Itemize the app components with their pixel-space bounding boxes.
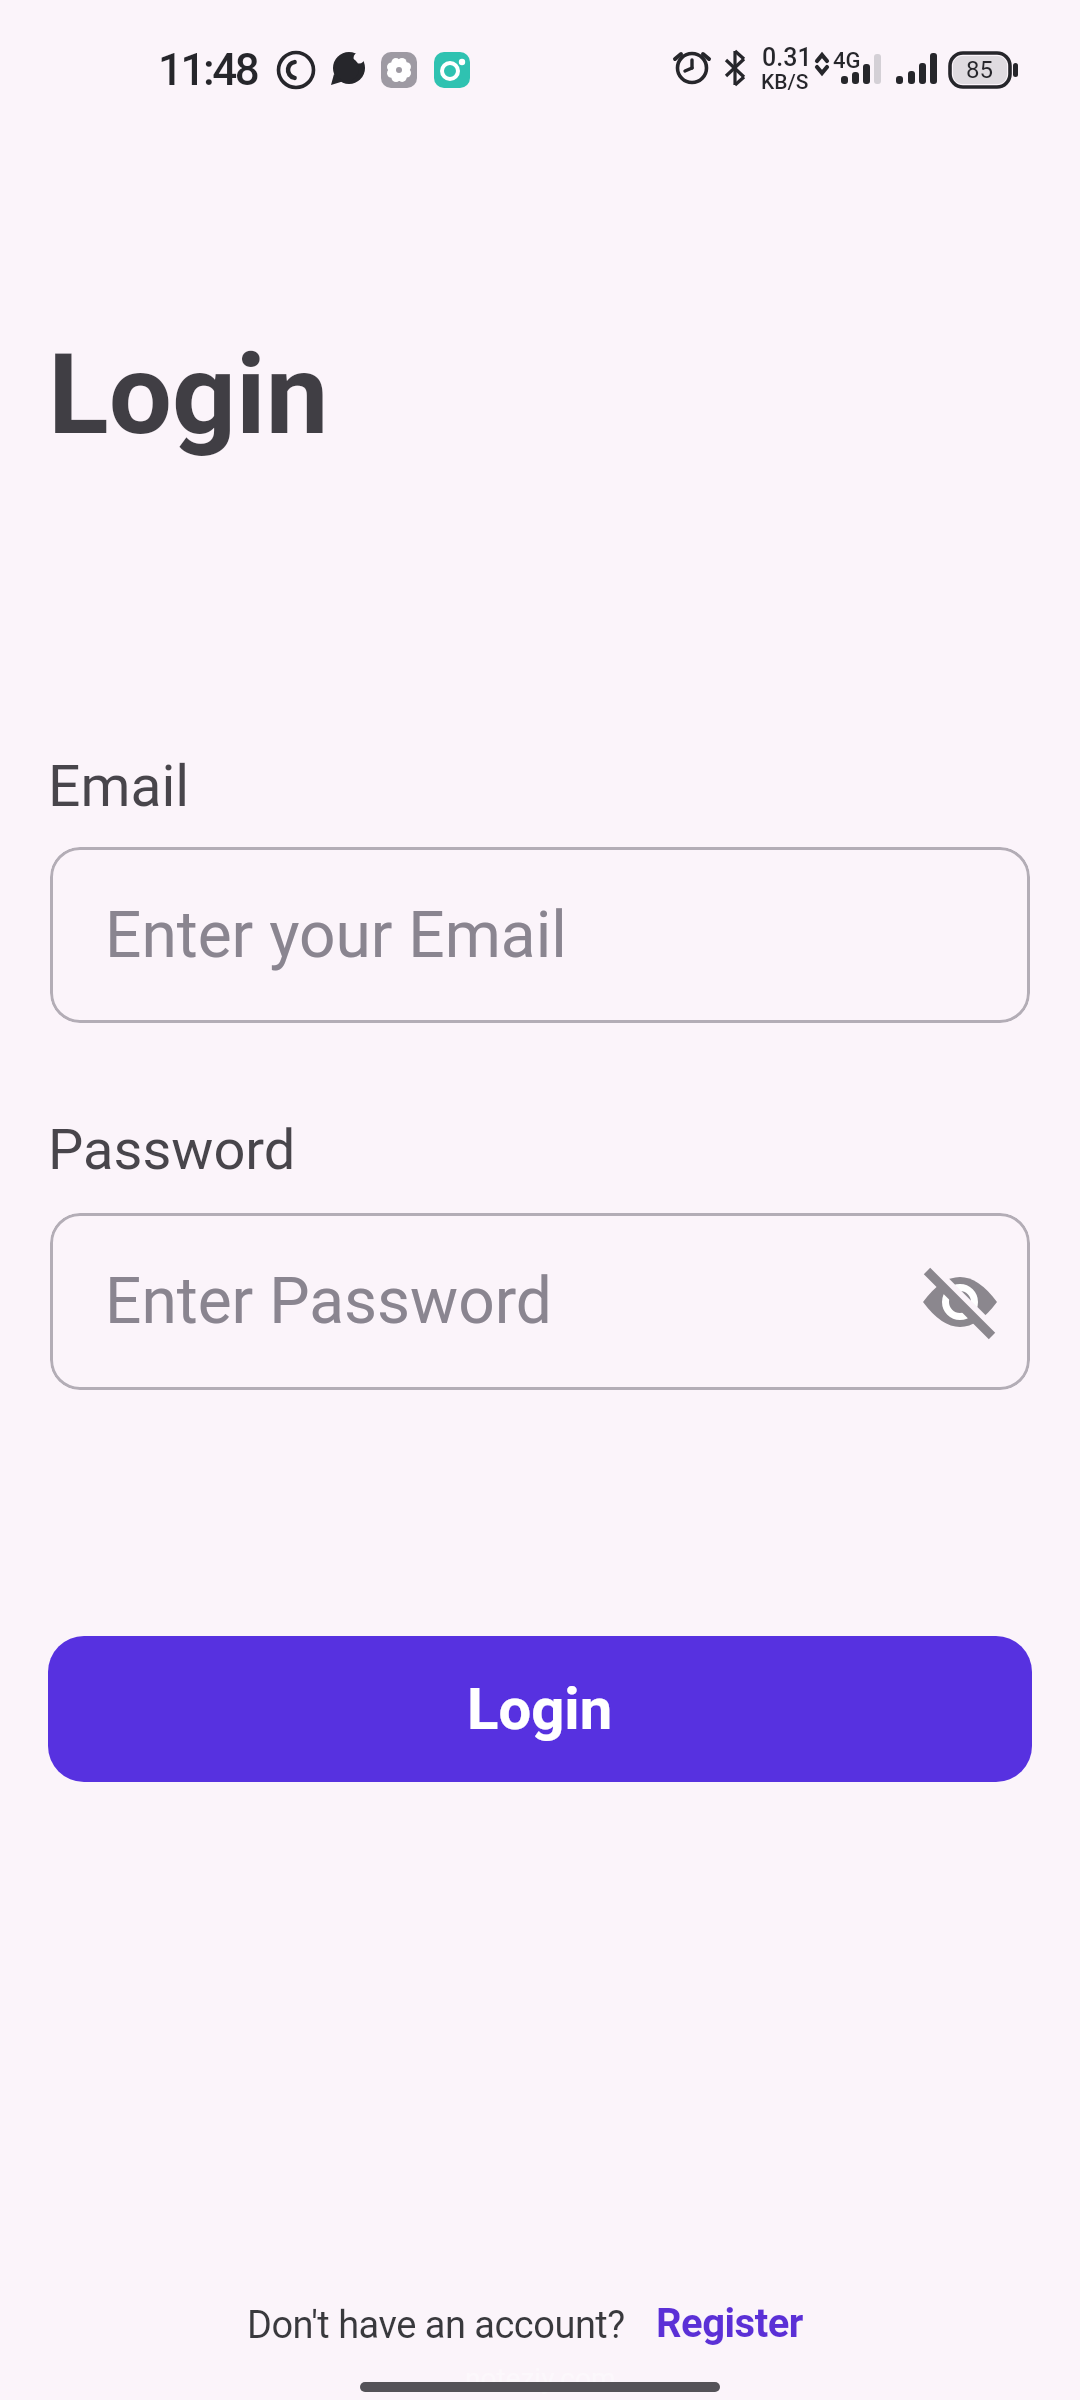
staticText: Login — [48, 329, 329, 460]
staticText: Don't have an account? — [247, 2303, 625, 2348]
staticText: Login — [467, 1675, 613, 1743]
staticText: 85 — [966, 56, 993, 84]
button[interactable]: Enter Password — [50, 1213, 1030, 1390]
button[interactable]: Register — [656, 2300, 803, 2347]
staticText: Enter Password — [105, 1264, 552, 1339]
button[interactable] — [916, 1261, 998, 1343]
staticText: 11:48 — [158, 44, 258, 96]
staticText: Enter your Email — [105, 898, 567, 973]
button[interactable]: Login — [48, 1636, 1032, 1782]
staticText: 0.31 — [762, 43, 812, 72]
staticText: KB/S — [761, 70, 809, 95]
staticText: 4G — [833, 48, 861, 74]
button[interactable]: Enter your Email — [50, 847, 1030, 1023]
staticText: noteziy.com — [465, 2362, 616, 2395]
staticText: Email — [48, 753, 190, 820]
staticText: Password — [48, 1117, 296, 1183]
staticText: Register — [656, 2300, 803, 2347]
